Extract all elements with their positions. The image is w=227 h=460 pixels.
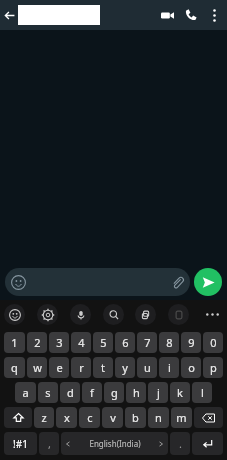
staticText: !#1 xyxy=(13,437,28,451)
button[interactable]: More xyxy=(201,303,223,325)
button[interactable]: Voice input xyxy=(70,304,91,325)
button[interactable]: Video call xyxy=(155,0,179,30)
staticText: c xyxy=(87,410,93,425)
button[interactable]: 7 xyxy=(137,332,157,353)
staticText: o xyxy=(188,360,195,375)
button[interactable]: k xyxy=(170,382,190,403)
button[interactable]: l xyxy=(192,382,212,403)
staticText: q xyxy=(11,360,18,375)
staticText: d xyxy=(67,385,74,400)
button[interactable]: Enter xyxy=(192,432,223,455)
button[interactable]: 2 xyxy=(27,332,47,353)
staticText: 0 xyxy=(210,335,217,350)
button[interactable]: 4 xyxy=(71,332,91,353)
staticText: 2 xyxy=(34,335,41,350)
button[interactable]: !#1 xyxy=(4,432,37,455)
button[interactable]: Back xyxy=(0,0,18,30)
button[interactable]: . xyxy=(170,432,190,455)
staticText: g xyxy=(111,385,118,400)
staticText: m xyxy=(176,410,187,425)
staticText: y xyxy=(122,360,128,375)
button[interactable]: 5 xyxy=(93,332,113,353)
button[interactable]: z xyxy=(34,407,54,428)
staticText: x xyxy=(64,410,70,425)
staticText: e xyxy=(56,360,63,375)
staticText: 5 xyxy=(100,335,107,350)
staticText: English(India) xyxy=(89,438,141,449)
button[interactable]: Search xyxy=(103,304,124,325)
button[interactable]: x xyxy=(56,407,77,428)
staticText: a xyxy=(22,385,29,400)
button[interactable]: Stickers xyxy=(135,304,156,325)
button[interactable]: a xyxy=(15,382,36,403)
staticText: b xyxy=(132,410,139,425)
button[interactable]: t xyxy=(93,357,113,378)
button[interactable]: More options xyxy=(203,0,225,30)
staticText: p xyxy=(210,360,217,375)
button[interactable]: y xyxy=(115,357,135,378)
button[interactable]: 0 xyxy=(203,332,223,353)
staticText: n xyxy=(155,410,162,425)
button[interactable]: e xyxy=(49,357,69,378)
button[interactable]: n xyxy=(148,407,169,428)
button[interactable]: 6 xyxy=(115,332,135,353)
button[interactable]: Call xyxy=(179,0,203,30)
staticText: j xyxy=(157,385,160,400)
button[interactable]: 1 xyxy=(4,332,25,353)
staticText: h xyxy=(133,385,140,400)
staticText: 4 xyxy=(78,335,85,350)
button[interactable]: g xyxy=(104,382,124,403)
staticText: z xyxy=(41,410,47,425)
button[interactable]: Send xyxy=(194,268,222,296)
staticText: w xyxy=(33,360,42,375)
staticText: 9 xyxy=(188,335,195,350)
button[interactable]: j xyxy=(148,382,168,403)
button[interactable]: English(India) xyxy=(61,432,168,455)
staticText: i xyxy=(168,360,171,375)
button[interactable]: Shift xyxy=(4,407,32,428)
button[interactable]: h xyxy=(126,382,146,403)
button[interactable]: r xyxy=(71,357,91,378)
staticText: . xyxy=(179,436,182,451)
button[interactable]: Clipboard xyxy=(168,304,189,325)
button[interactable]: c xyxy=(79,407,100,428)
staticText: v xyxy=(110,410,116,425)
button[interactable] xyxy=(5,268,190,296)
staticText: 6 xyxy=(122,335,129,350)
button[interactable]: q xyxy=(4,357,25,378)
button[interactable]: , xyxy=(39,432,59,455)
button[interactable]: u xyxy=(137,357,157,378)
button[interactable]: Emoji xyxy=(4,304,25,325)
staticText: 3 xyxy=(56,335,63,350)
button[interactable]: p xyxy=(203,357,223,378)
staticText: r xyxy=(79,360,84,375)
button[interactable]: b xyxy=(125,407,146,428)
button[interactable]: 9 xyxy=(181,332,201,353)
staticText: k xyxy=(177,385,183,400)
staticText: 7 xyxy=(144,335,151,350)
button[interactable]: s xyxy=(38,382,58,403)
staticText: f xyxy=(90,385,94,400)
button[interactable]: i xyxy=(159,357,179,378)
staticText: u xyxy=(144,360,151,375)
staticText: l xyxy=(201,385,204,400)
staticText: t xyxy=(101,360,105,375)
staticText: 8 xyxy=(166,335,173,350)
staticText: s xyxy=(45,385,51,400)
button[interactable]: Settings xyxy=(37,304,58,325)
button[interactable]: 8 xyxy=(159,332,179,353)
button[interactable]: v xyxy=(102,407,123,428)
button[interactable]: Backspace xyxy=(194,407,223,428)
button[interactable]: m xyxy=(171,407,192,428)
button[interactable]: f xyxy=(82,382,102,403)
staticText: 1 xyxy=(11,335,18,350)
staticText: , xyxy=(48,436,51,451)
button[interactable]: d xyxy=(60,382,80,403)
button[interactable]: o xyxy=(181,357,201,378)
button[interactable]: w xyxy=(27,357,47,378)
button[interactable]: 3 xyxy=(49,332,69,353)
